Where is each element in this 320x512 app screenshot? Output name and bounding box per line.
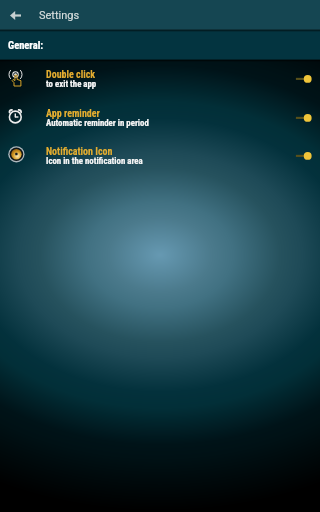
staticText: Notification Icon [46, 146, 113, 158]
staticText: App reminder [46, 108, 100, 120]
button[interactable]: Double click [0, 60, 320, 99]
button[interactable]: App reminder [0, 99, 320, 138]
staticText: Icon in the notification area [46, 156, 143, 166]
staticText: Double click [46, 69, 96, 81]
staticText: Automatic reminder in period [46, 118, 149, 128]
button[interactable]: Back [2, 2, 28, 28]
button[interactable]: Notification Icon [0, 137, 320, 176]
staticText: General: [8, 39, 44, 51]
staticText: Settings [39, 9, 80, 22]
staticText: to exit the app [46, 79, 97, 89]
